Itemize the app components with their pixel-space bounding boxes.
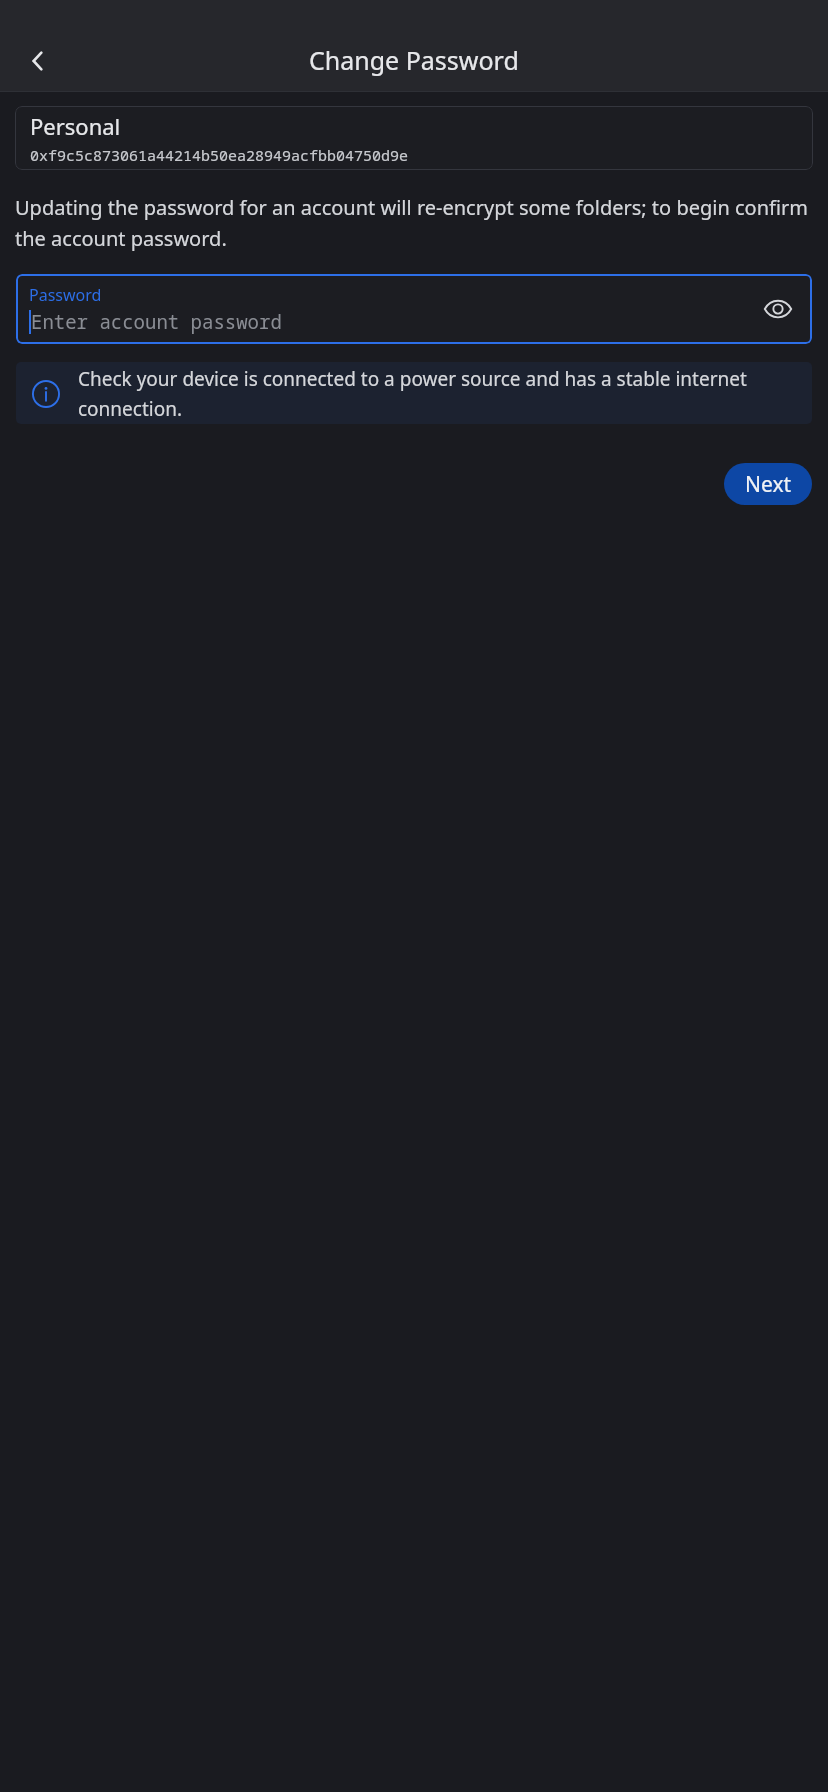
staticText: Enter account password <box>31 309 282 335</box>
button[interactable]: Password <box>16 274 812 344</box>
staticText: Check your device is connected to a powe… <box>78 366 794 421</box>
button[interactable]: Show password <box>756 287 800 331</box>
staticText: Change Password <box>309 43 519 77</box>
staticText: Personal <box>30 111 121 141</box>
staticText: 0xf9c5c873061a44214b50ea28949acfbb04750d… <box>30 145 409 165</box>
staticText: Updating the password for an account wil… <box>15 194 813 251</box>
button[interactable]: Personal <box>15 106 813 170</box>
staticText: Next <box>745 470 792 499</box>
staticText: Password <box>29 284 102 306</box>
button[interactable]: Back <box>14 37 62 85</box>
button[interactable]: Next <box>724 463 812 505</box>
